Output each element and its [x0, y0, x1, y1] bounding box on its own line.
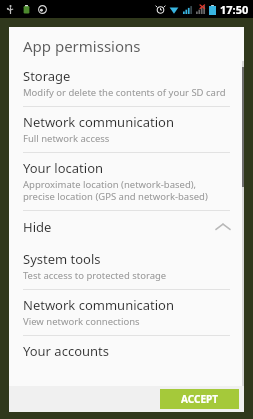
staticText: Your location — [23, 159, 104, 177]
staticText: Test access to protected storage — [23, 269, 167, 282]
staticText: Your accounts — [23, 342, 109, 360]
staticText: Approximate location (network-based), pr… — [23, 178, 230, 203]
staticText: System tools — [23, 250, 101, 268]
staticText: App permissions — [23, 36, 141, 56]
staticText: 17:50 — [220, 2, 249, 17]
button[interactable]: Hide — [9, 210, 244, 244]
button[interactable]: System tools — [9, 244, 244, 289]
staticText: View network connections — [23, 315, 140, 328]
staticText: Hide — [23, 218, 52, 236]
button[interactable]: ACCEPT — [160, 389, 239, 409]
staticText: Storage — [23, 67, 71, 85]
button[interactable]: Storage — [9, 61, 244, 106]
staticText: Network communication — [23, 296, 174, 314]
staticText: Modify or delete the contents of your SD… — [23, 86, 226, 99]
other: Collapse — [216, 223, 230, 231]
button[interactable]: Network communication — [9, 289, 244, 335]
button[interactable]: Your accounts — [9, 335, 244, 360]
staticText: Network communication — [23, 113, 174, 131]
button[interactable]: Network communication — [9, 106, 244, 152]
button[interactable]: Your location — [9, 152, 244, 210]
staticText: ACCEPT — [181, 392, 218, 406]
staticText: Full network access — [23, 132, 110, 145]
